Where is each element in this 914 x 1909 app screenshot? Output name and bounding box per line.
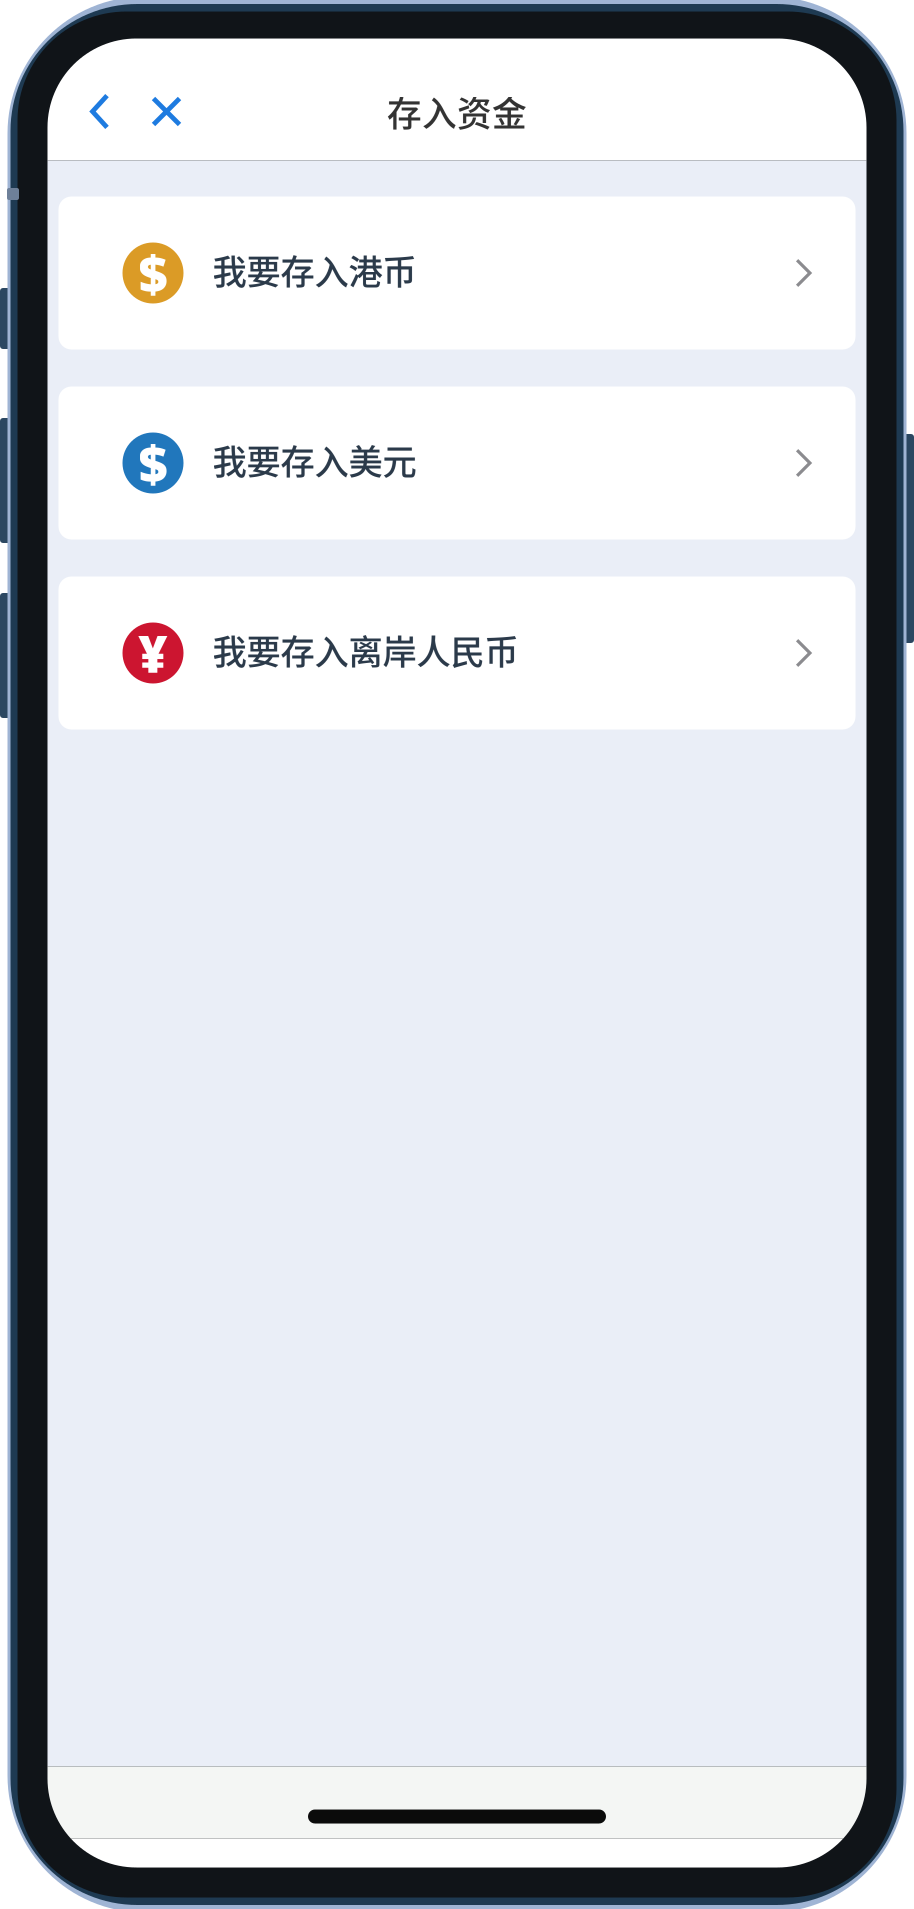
staticText: 我要存入港币	[212, 245, 416, 294]
button[interactable]: Close	[140, 87, 193, 136]
button[interactable]: ¥	[58, 576, 855, 729]
staticText: $	[138, 429, 167, 497]
staticText: $	[138, 239, 167, 307]
button[interactable]: Back	[78, 85, 121, 138]
staticText: ¥	[138, 619, 168, 687]
button[interactable]: $	[58, 386, 855, 539]
button[interactable]: $	[58, 196, 855, 349]
staticText: 我要存入离岸人民币	[212, 625, 518, 674]
staticText: 存入资金	[387, 86, 527, 137]
staticText: 我要存入美元	[212, 435, 416, 484]
